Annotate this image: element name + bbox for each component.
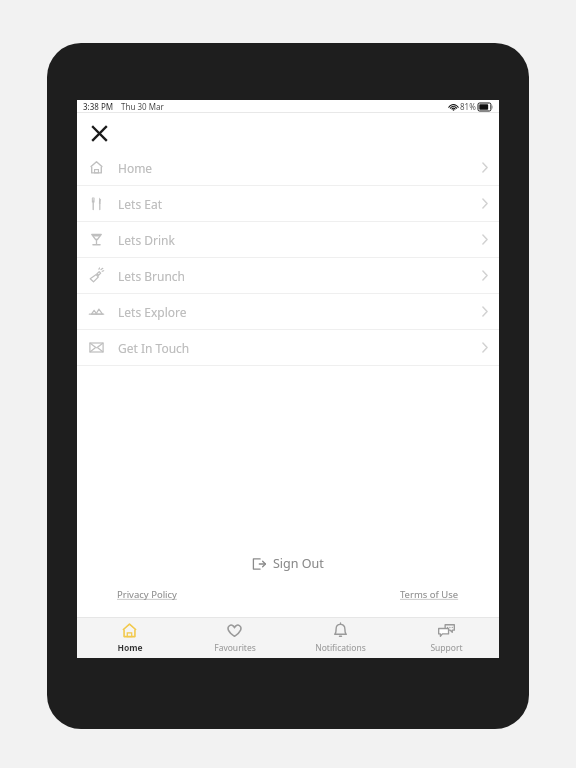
button[interactable]: Favourites [182,618,287,658]
button[interactable]: Support [393,618,499,658]
staticText: 3:38 PM [83,101,114,112]
button[interactable]: Privacy Policy [113,584,181,605]
staticText: Home [117,642,143,654]
button[interactable]: Lets Explore [77,294,499,330]
staticText: Lets Explore [118,304,187,320]
staticText: Support [430,642,463,654]
button[interactable]: Home [77,150,499,186]
staticText: Sign Out [273,555,324,572]
staticText: Lets Eat [118,196,162,212]
button[interactable]: Terms of Use [396,584,463,605]
staticText: Favourites [214,642,256,654]
button[interactable]: Get In Touch [77,330,499,366]
staticText: Thu 30 Mar [121,101,164,112]
button[interactable]: Sign Out [244,551,332,576]
button[interactable]: Lets Drink [77,222,499,258]
button[interactable]: Lets Eat [77,186,499,222]
button[interactable]: Notifications [287,618,393,658]
staticText: Terms of Use [400,588,459,601]
staticText: Lets Brunch [118,268,186,284]
button[interactable]: Home [77,618,182,658]
staticText: Privacy Policy [117,588,177,601]
staticText: Home [118,160,153,176]
button[interactable]: Lets Brunch [77,258,499,294]
button[interactable]: Close [87,121,111,145]
staticText: 81% [460,101,476,112]
staticText: Get In Touch [118,340,190,356]
staticText: Lets Drink [118,232,175,248]
staticText: Notifications [315,642,366,654]
